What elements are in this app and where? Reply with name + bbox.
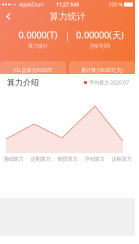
staticText: 基础算力	[3, 156, 23, 162]
staticText: 平均算力 2020.07	[87, 79, 129, 86]
staticText: 0.0000(T)	[18, 29, 57, 41]
staticText: 算力统计	[28, 43, 48, 49]
button[interactable]: FIL总算力0.000T	[0, 61, 66, 79]
staticText: 挖矿时间	[90, 43, 110, 49]
staticText: AppleDum	[19, 1, 44, 8]
staticText: 100 %	[108, 1, 122, 8]
staticText: 0.00000(天)	[76, 29, 124, 41]
staticText: 期货算力	[57, 156, 77, 162]
button[interactable]: 返回	[0, 9, 17, 24]
staticText: 算力统计	[49, 11, 85, 22]
staticText: 算力介绍	[7, 78, 39, 87]
staticText: 11:27 AM	[56, 1, 79, 8]
staticText: FIL总算力0.000T	[13, 66, 52, 73]
staticText: 浮动算力	[84, 156, 104, 162]
staticText: 定期算力	[30, 156, 50, 162]
staticText: 达标算力	[111, 156, 131, 162]
staticText: 累计算力0.00T(天)	[81, 66, 123, 74]
button[interactable]: 累计算力0.00T(天)	[69, 61, 135, 79]
